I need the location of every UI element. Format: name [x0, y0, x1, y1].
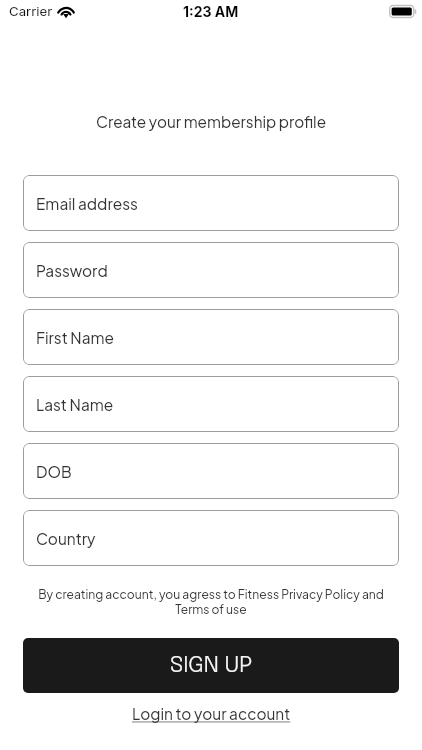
staticText: Last Name [36, 395, 114, 414]
staticText: Password [36, 261, 108, 280]
staticText: Create your membership profile [0, 112, 422, 131]
staticText: Email address [36, 194, 138, 213]
other: Battery full [389, 5, 415, 18]
button[interactable]: SIGN UP [23, 638, 399, 693]
staticText: 1:23 AM [183, 3, 239, 20]
staticText: DOB [36, 462, 72, 481]
staticText: Country [36, 529, 96, 548]
staticText: Login to your account [132, 704, 291, 723]
button[interactable]: DOB [23, 443, 399, 499]
staticText: SIGN UP [170, 654, 253, 677]
staticText: Carrier [9, 3, 53, 19]
button[interactable]: Password [23, 242, 399, 298]
other: Wi-Fi signal [57, 4, 75, 17]
staticText: By creating account, you agress to Fitne… [36, 586, 386, 617]
button[interactable]: Email address [23, 175, 399, 231]
button[interactable]: Last Name [23, 376, 399, 432]
button[interactable]: Login to your account [124, 700, 299, 727]
button[interactable]: Country [23, 510, 399, 566]
staticText: First Name [36, 328, 114, 347]
button[interactable]: First Name [23, 309, 399, 365]
